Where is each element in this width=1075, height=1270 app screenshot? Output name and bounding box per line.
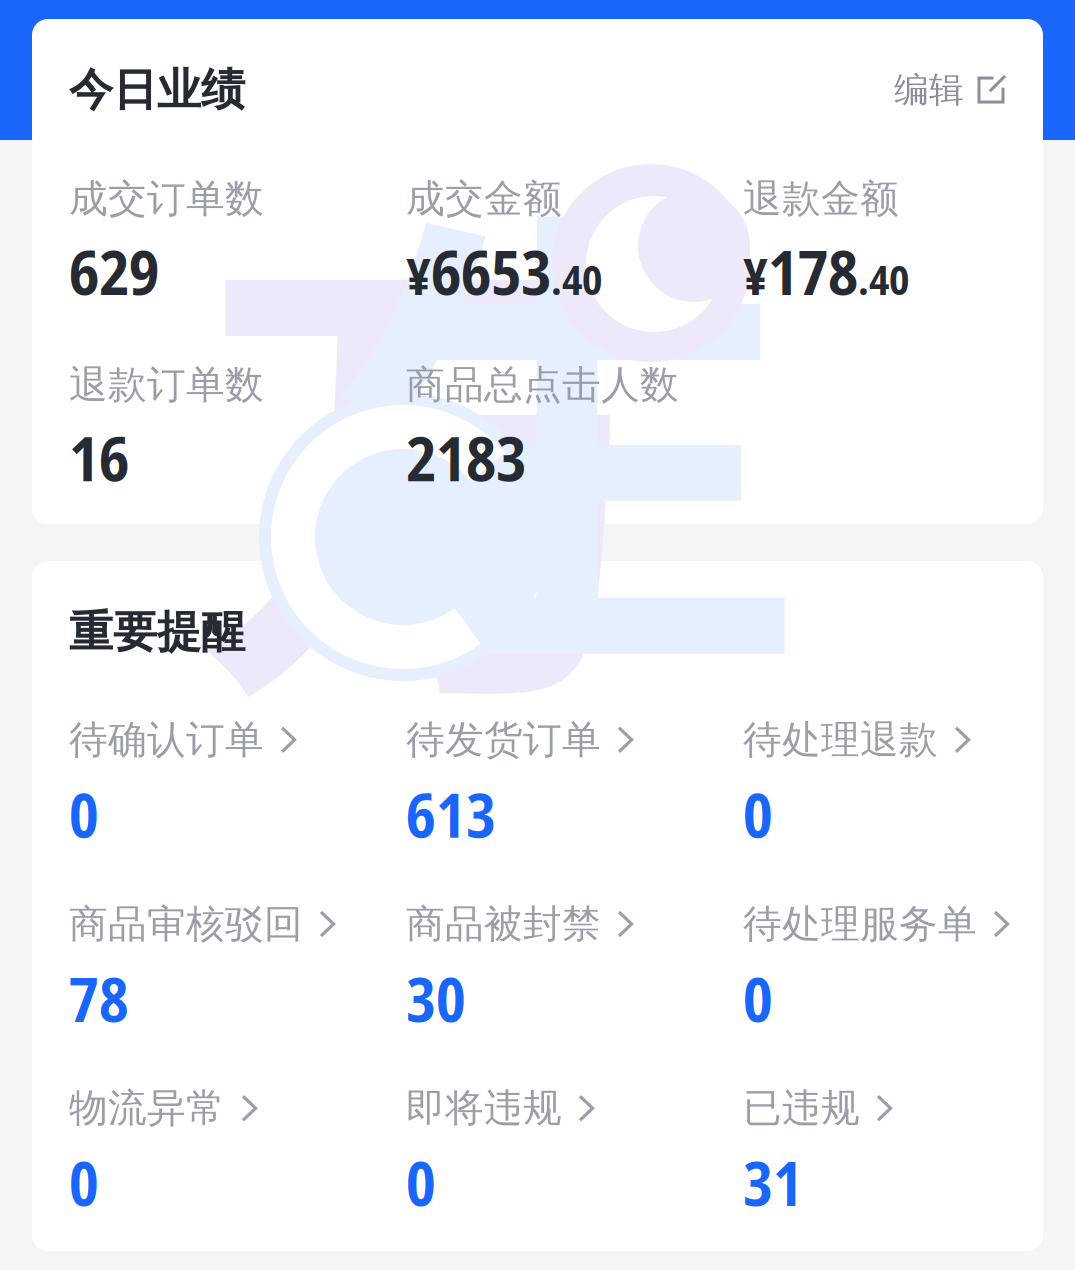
staticText: 今日业绩	[69, 63, 245, 117]
button[interactable]: 已违规	[743, 1084, 1075, 1224]
staticText: 即将违规	[406, 1084, 562, 1132]
staticText: 重要提醒	[69, 605, 245, 659]
staticText: 31	[743, 1142, 803, 1224]
staticText: 退款订单数	[69, 361, 264, 409]
staticText: 0	[69, 773, 99, 855]
staticText: 待发货订单	[406, 716, 601, 763]
staticText: 0	[406, 1142, 436, 1224]
staticText: 0	[743, 958, 773, 1039]
button[interactable]: 待发货订单	[406, 716, 743, 855]
staticText: 30	[406, 958, 466, 1039]
staticText: 成交订单数	[69, 175, 264, 222]
staticText: .40	[551, 251, 602, 307]
button[interactable]: 物流异常	[69, 1084, 406, 1224]
button[interactable]: 待处理退款	[743, 716, 1075, 855]
staticText: 物流异常	[69, 1084, 225, 1132]
staticText: 78	[69, 958, 129, 1039]
staticText: 2183	[406, 416, 526, 499]
button[interactable]: 待确认订单	[69, 716, 406, 855]
staticText: 编辑	[894, 69, 964, 111]
button[interactable]: 商品被封禁	[406, 900, 743, 1039]
staticText: 生	[326, 68, 806, 763]
staticText: 0	[743, 773, 773, 855]
button[interactable]: 即将违规	[406, 1084, 743, 1224]
staticText: 商品审核驳回	[69, 900, 303, 948]
staticText: 16	[69, 416, 129, 499]
staticText: 商品总点击人数	[406, 361, 679, 409]
staticText: 已违规	[743, 1084, 860, 1132]
staticText: 待处理退款	[743, 716, 938, 763]
staticText: ¥	[743, 241, 768, 310]
staticText: 万	[197, 98, 677, 793]
staticText: 待确认订单	[69, 716, 264, 763]
staticText: .40	[858, 251, 909, 307]
staticText: 178	[768, 229, 858, 313]
staticText: 退款金额	[743, 175, 899, 222]
staticText: ¥	[406, 241, 431, 310]
staticText: 成交金额	[406, 175, 562, 222]
staticText: 6653	[431, 229, 551, 313]
button[interactable]: 商品审核驳回	[69, 900, 406, 1039]
staticText: 629	[69, 229, 159, 313]
staticText: 613	[406, 773, 496, 855]
staticText: 0	[69, 1142, 99, 1224]
staticText: 待处理服务单	[743, 900, 977, 948]
staticText: 商品被封禁	[406, 900, 601, 948]
button[interactable]: 待处理服务单	[743, 900, 1075, 1039]
button[interactable]: 编辑	[894, 69, 1006, 111]
